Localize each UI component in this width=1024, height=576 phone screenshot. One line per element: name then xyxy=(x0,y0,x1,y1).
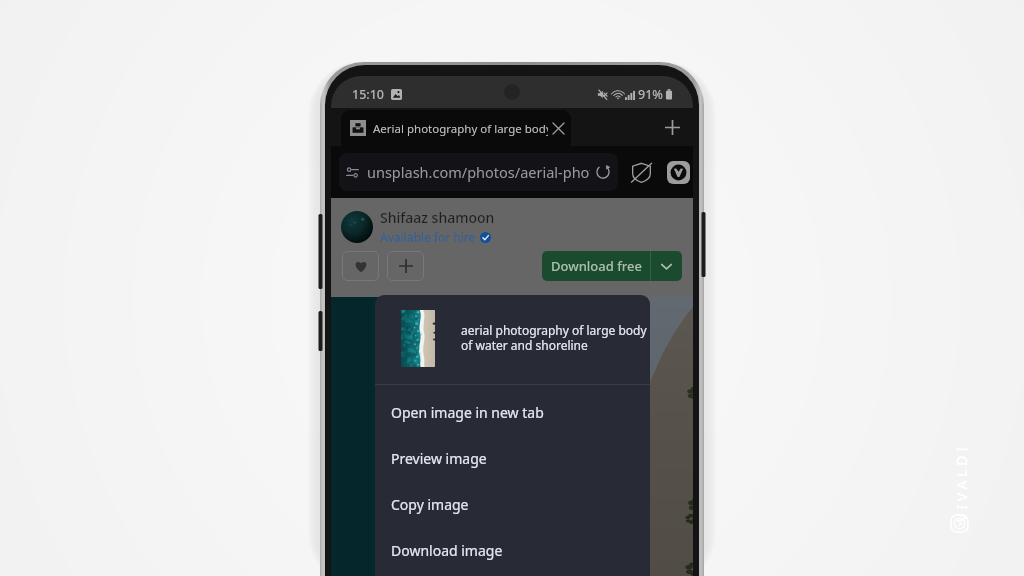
button[interactable]: Preview image xyxy=(375,435,650,481)
button[interactable]: Reload xyxy=(593,162,613,182)
staticText: 15:10 xyxy=(352,86,385,103)
staticText: Available for hire xyxy=(380,229,476,245)
button[interactable]: unsplash.com/photos/aerial-photography-o… xyxy=(339,153,618,191)
staticText: Download free xyxy=(551,257,642,275)
button[interactable]: Download free xyxy=(542,251,650,281)
button[interactable]: Add to collection xyxy=(387,251,424,281)
button[interactable]: Tracker and ad blocker xyxy=(626,157,656,187)
button[interactable]: Open image in new tab xyxy=(375,389,650,435)
staticText: Copy image xyxy=(391,495,469,514)
button[interactable]: Aerial photography of large body of wate… xyxy=(341,110,571,146)
button[interactable]: Close tab xyxy=(550,120,567,137)
staticText: Aerial photography of large body of wate… xyxy=(373,121,548,137)
staticText: unsplash.com/photos/aerial-photography-o… xyxy=(367,162,590,182)
button[interactable]: Download image xyxy=(375,527,650,573)
staticText: aerial photography of large body of wate… xyxy=(461,322,647,353)
button[interactable]: Vivaldi menu xyxy=(663,157,693,187)
staticText: 91% xyxy=(638,86,663,103)
staticText: Preview image xyxy=(391,449,487,468)
staticText: VIVALDI xyxy=(952,443,971,522)
button[interactable]: Download options xyxy=(651,251,682,281)
button[interactable]: Copy image xyxy=(375,481,650,527)
button[interactable]: Like xyxy=(342,251,379,281)
staticText: Open image in new tab xyxy=(391,403,544,422)
button[interactable]: New tab xyxy=(655,110,689,144)
staticText: Download image xyxy=(391,541,503,560)
staticText: Shifaaz shamoon xyxy=(380,208,495,227)
